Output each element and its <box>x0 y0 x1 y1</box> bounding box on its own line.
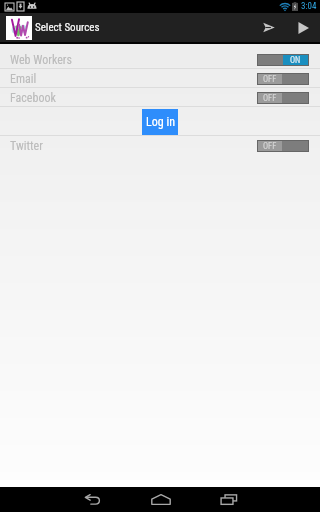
button[interactable]: Off <box>258 93 308 103</box>
button[interactable]: Off <box>258 141 308 151</box>
button[interactable]: Home <box>126 487 195 512</box>
button[interactable]: Recent apps <box>195 487 263 512</box>
button[interactable]: Play <box>292 13 315 42</box>
staticText: Facebook <box>10 91 56 105</box>
button[interactable]: On <box>258 55 308 65</box>
staticText: ON <box>290 55 301 65</box>
staticText: Twitter <box>10 139 43 153</box>
staticText: OFF <box>263 141 277 151</box>
button[interactable]: Back <box>58 487 126 512</box>
button[interactable]: Email <box>0 69 320 88</box>
staticText: 3:04 <box>301 1 317 12</box>
staticText: OFF <box>263 74 277 84</box>
button[interactable]: Off <box>258 74 308 84</box>
button[interactable]: App icon <box>6 16 32 40</box>
button[interactable]: Web Workers <box>0 50 320 69</box>
button[interactable]: Twitter <box>0 136 320 155</box>
staticText: Log in <box>146 115 175 129</box>
button[interactable]: Facebook <box>0 88 320 107</box>
staticText: Email <box>10 72 37 86</box>
staticText: Web Workers <box>10 53 72 67</box>
staticText: Select Sources <box>35 21 100 34</box>
button[interactable]: Send <box>246 13 292 42</box>
button[interactable]: Log in <box>142 109 178 135</box>
staticText: OFF <box>263 93 277 103</box>
